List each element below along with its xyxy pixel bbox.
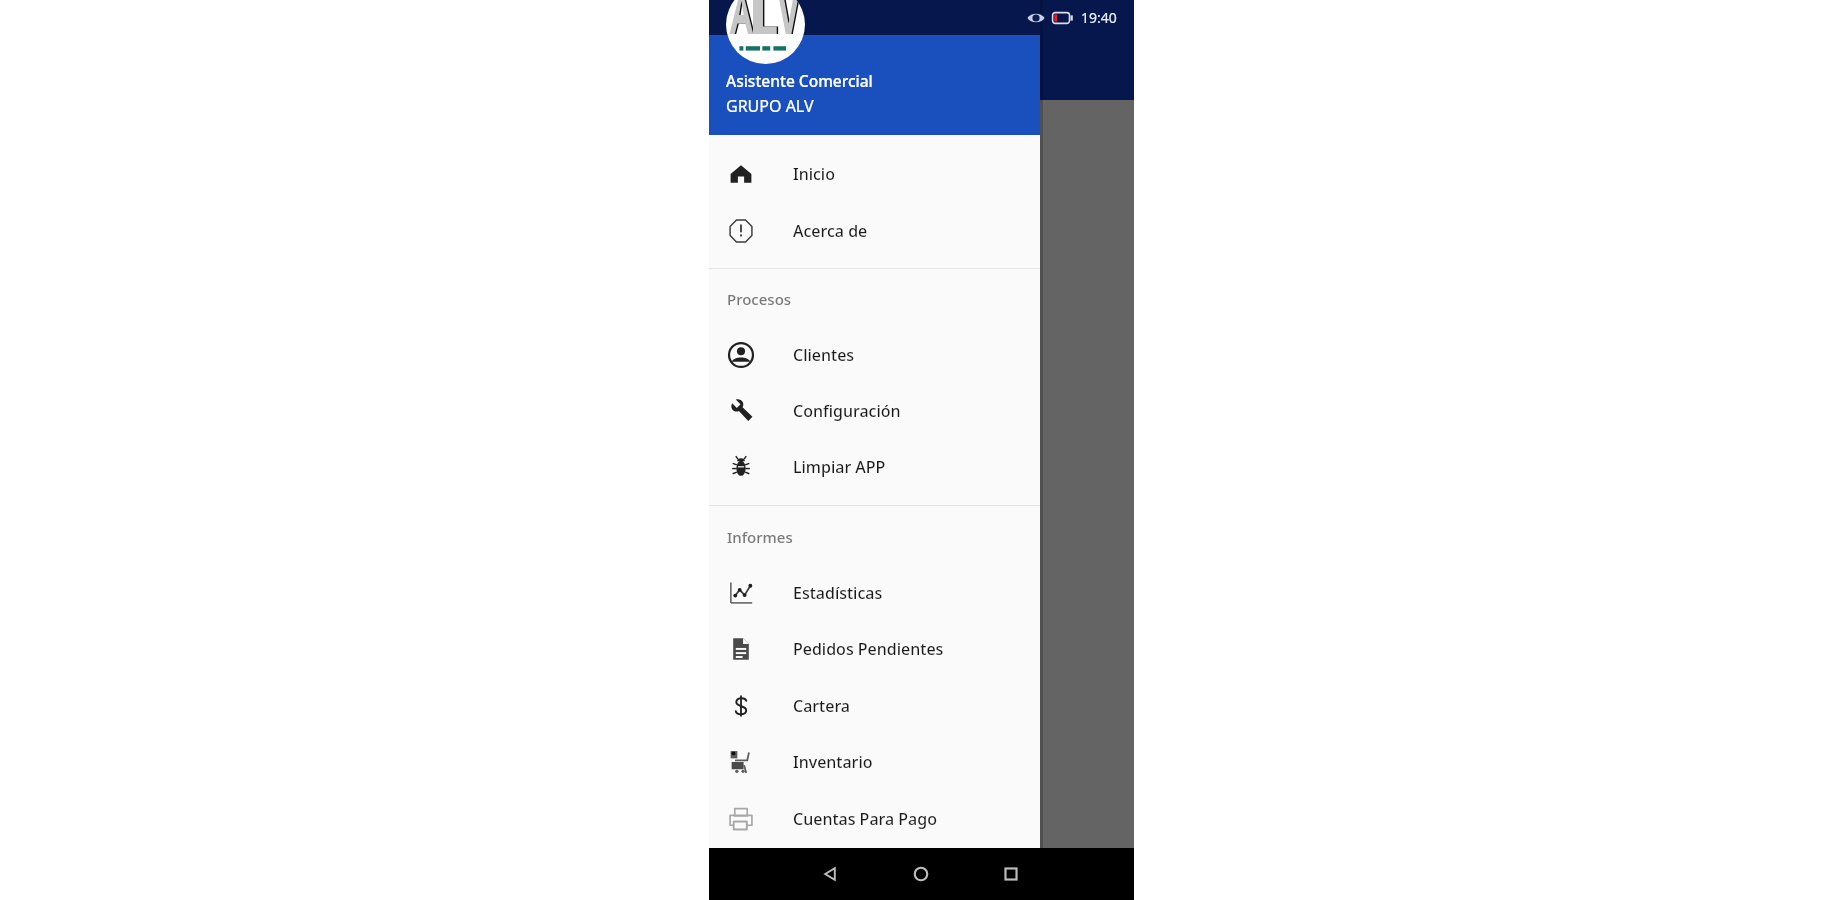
button[interactable]: Clientes: [709, 327, 1040, 383]
staticText: Inventario: [793, 751, 873, 773]
button[interactable]: Cuentas Para Pago: [709, 791, 1040, 847]
button[interactable]: Acerca de: [709, 203, 1040, 259]
button[interactable]: Inventario: [709, 734, 1040, 790]
button[interactable]: Home: [909, 862, 933, 886]
button[interactable]: Inicio: [709, 146, 1040, 202]
staticText: Estadísticas: [793, 582, 883, 604]
staticText: Procesos: [727, 289, 792, 309]
staticText: Configuración: [793, 400, 901, 422]
staticText: Inicio: [793, 163, 835, 185]
staticText: GRUPO ALV: [726, 95, 814, 117]
staticText: Cuentas Para Pago: [793, 808, 937, 830]
staticText: 19:40: [1081, 8, 1117, 27]
staticText: Asistente Comercial: [726, 70, 873, 91]
staticText: Pedidos Pendientes: [793, 638, 944, 660]
button[interactable]: Configuración: [709, 383, 1040, 439]
button[interactable]: Limpiar APP: [709, 439, 1040, 495]
staticText: Limpiar APP: [793, 456, 886, 478]
button[interactable]: Estadísticas: [709, 565, 1040, 621]
staticText: Clientes: [793, 344, 855, 366]
button[interactable]: Cartera: [709, 678, 1040, 734]
staticText: Cartera: [793, 695, 850, 717]
staticText: Acerca de: [793, 220, 868, 242]
staticText: Informes: [727, 527, 793, 547]
button[interactable]: Back: [818, 862, 842, 886]
button[interactable]: Close navigation drawer: [709, 100, 1134, 848]
button[interactable]: Recent apps: [999, 862, 1023, 886]
button[interactable]: Pedidos Pendientes: [709, 621, 1040, 677]
